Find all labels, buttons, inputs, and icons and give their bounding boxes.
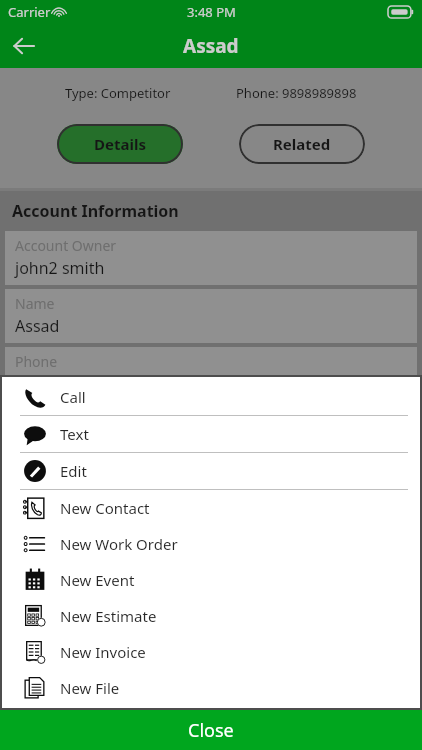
staticText: 9898989898 <box>15 373 107 395</box>
button[interactable]: Call <box>0 379 422 415</box>
staticText: Carrier <box>8 3 51 21</box>
button[interactable]: New File <box>0 670 422 706</box>
button[interactable]: Back <box>0 24 48 68</box>
button[interactable]: New Event <box>0 562 422 598</box>
button[interactable] <box>0 706 422 710</box>
staticText: Account Owner <box>15 236 117 255</box>
button[interactable]: Close <box>0 710 422 750</box>
button[interactable]: Text <box>0 416 422 452</box>
staticText: Phone <box>15 352 58 371</box>
button[interactable]: New Invoice <box>0 634 422 670</box>
staticText: Assad <box>183 33 239 59</box>
staticText: Type: Competitor <box>65 84 171 102</box>
staticText: New Event <box>60 570 135 590</box>
staticText: Details <box>94 134 146 154</box>
button[interactable]: New Contact <box>0 490 422 526</box>
staticText: New Work Order <box>60 534 178 554</box>
staticText: Name <box>15 294 55 313</box>
staticText: john2 smith <box>15 257 105 279</box>
staticText: Related <box>273 134 331 154</box>
staticText: New Invoice <box>60 642 146 662</box>
staticText: Edit <box>60 461 87 481</box>
button[interactable]: Related <box>239 124 365 164</box>
staticText: Assad <box>15 315 60 337</box>
staticText: Text <box>60 424 89 444</box>
staticText: New Estimate <box>60 606 157 626</box>
staticText: Phone: 9898989898 <box>236 84 357 102</box>
staticText: New Contact <box>60 498 150 518</box>
staticText: 3:48 PM <box>187 3 236 21</box>
staticText: Call <box>60 387 86 407</box>
button[interactable]: Details <box>57 124 183 164</box>
button[interactable]: New Estimate <box>0 598 422 634</box>
staticText: Account Information <box>12 200 179 222</box>
staticText: Close <box>188 718 234 743</box>
button[interactable]: New Work Order <box>0 526 422 562</box>
button[interactable]: Edit <box>0 453 422 489</box>
staticText: New File <box>60 678 120 698</box>
